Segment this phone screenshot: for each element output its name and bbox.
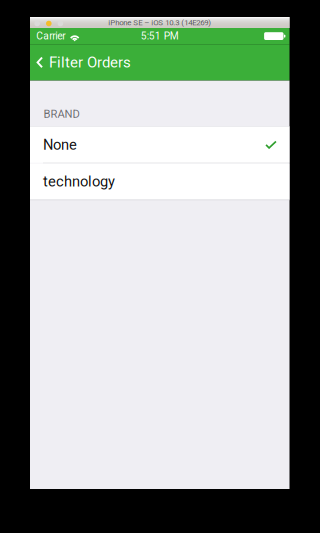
staticText: Carrier [36,30,65,42]
staticText: Filter Orders [49,54,131,71]
staticText: technology [43,173,115,190]
button[interactable]: None [30,127,289,163]
button[interactable]: technology [30,163,289,200]
button[interactable]: Filter Orders [30,44,139,81]
staticText: None [43,136,77,153]
staticText: 5:51 PM [141,30,179,42]
staticText: iPhone SE – iOS 10.3 (14E269) [108,18,211,27]
staticText: BRAND [43,107,79,120]
